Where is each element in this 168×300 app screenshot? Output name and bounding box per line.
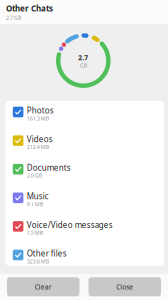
button[interactable]: Voice/Video messages	[5, 215, 164, 237]
staticText: Photos	[27, 105, 54, 116]
staticText: 2.7	[78, 53, 88, 62]
staticText: Voice/Video messages	[27, 219, 113, 230]
button[interactable]: Other files	[5, 244, 164, 266]
button[interactable]: Clear	[7, 277, 79, 296]
staticText: Other files	[27, 248, 67, 259]
button[interactable]: Close	[88, 277, 161, 296]
button[interactable]: Videos	[5, 130, 164, 152]
staticText: 161.3 MB	[27, 115, 49, 122]
staticText: GB	[80, 62, 87, 69]
button[interactable]: Music	[5, 187, 164, 209]
staticText: Music	[27, 191, 49, 201]
staticText: 212.4 MB	[27, 143, 49, 150]
button[interactable]: Photos	[5, 101, 164, 123]
staticText: 2.7 GB	[6, 14, 21, 21]
staticText: 9.1 MB	[27, 201, 43, 208]
staticText: 1.5 MB	[27, 229, 43, 236]
staticText: Videos	[27, 134, 53, 144]
staticText: Close	[116, 282, 133, 291]
staticText: Other Chats	[6, 3, 53, 14]
button[interactable]: Documents	[5, 158, 164, 180]
staticText: Documents	[27, 162, 71, 173]
staticText: 2.0 GB	[27, 172, 42, 179]
staticText: Clear	[35, 282, 52, 291]
staticText: 323.8 MB	[27, 258, 49, 265]
